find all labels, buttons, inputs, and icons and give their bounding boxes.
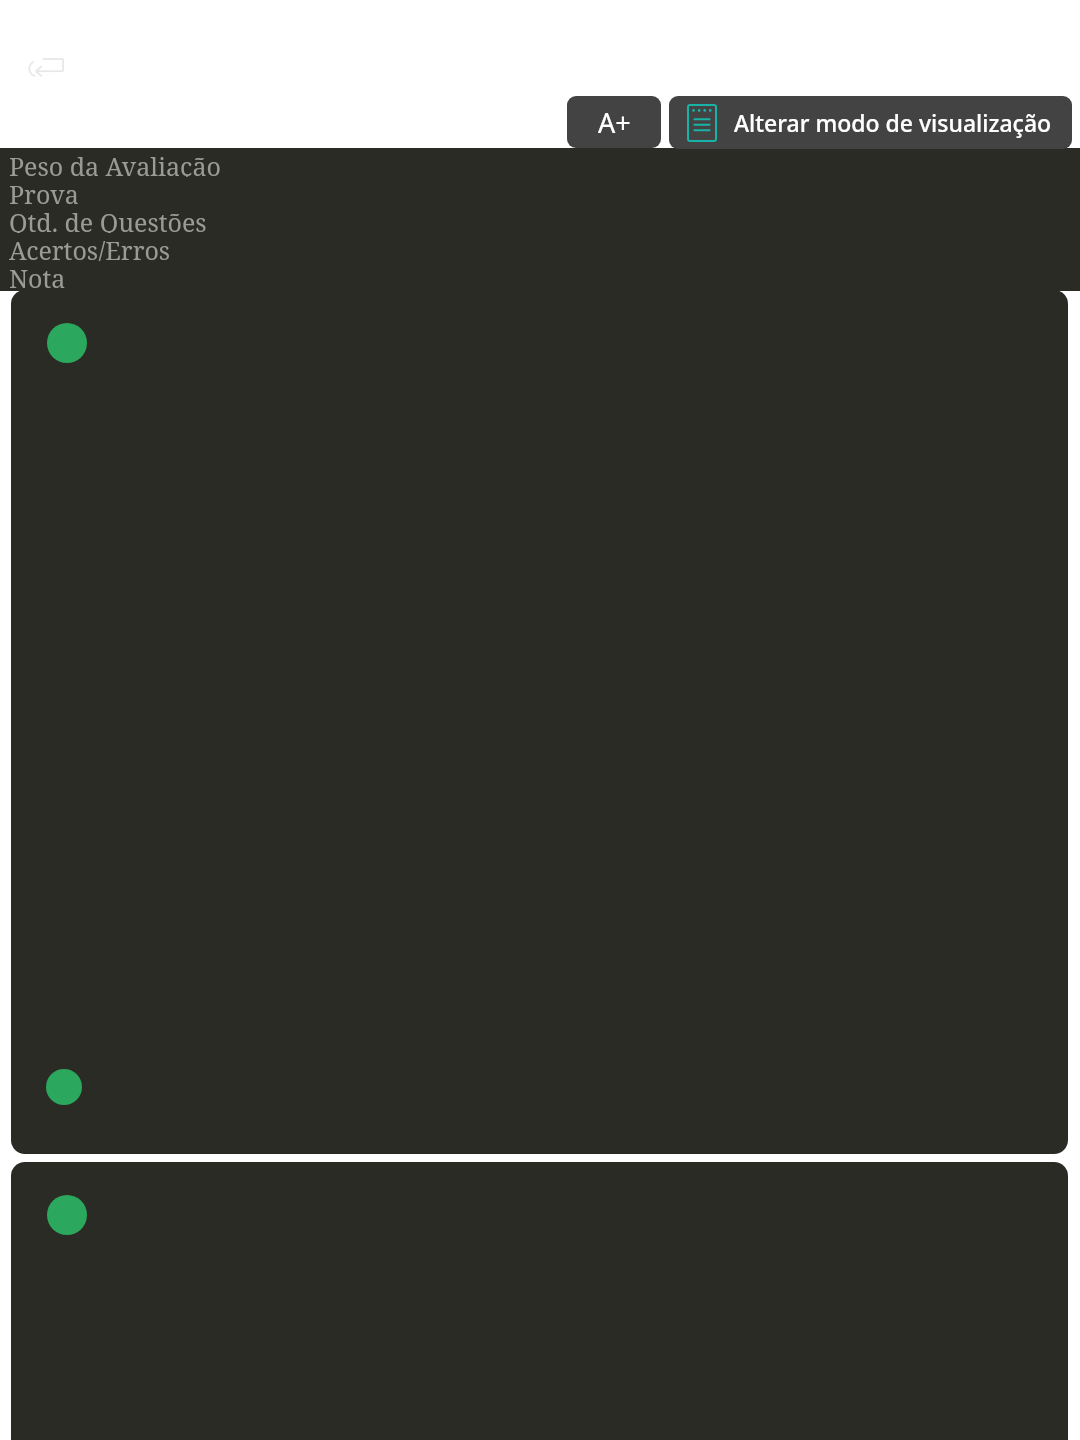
button[interactable]: Voltar: [27, 52, 71, 84]
staticText: Acertos/Erros: [9, 233, 171, 261]
staticText: Nota: [9, 261, 66, 289]
button[interactable]: Prova: [9, 177, 1080, 205]
button[interactable]: Nota: [9, 261, 1080, 289]
staticText: Qtd. de Questões: [9, 205, 207, 233]
button[interactable]: Qtd. de Questões: [9, 205, 1080, 233]
staticText: Prova: [9, 177, 79, 205]
staticText: A+: [598, 104, 631, 141]
button[interactable]: [11, 290, 1068, 1154]
button[interactable]: Acertos/Erros: [9, 233, 1080, 261]
button[interactable]: Alterar modo de visualização: [669, 96, 1072, 149]
button[interactable]: A+: [567, 96, 661, 148]
staticText: Alterar modo de visualização: [734, 107, 1052, 138]
button[interactable]: Peso da Avaliação: [9, 149, 1080, 177]
staticText: Peso da Avaliação: [9, 149, 221, 177]
button[interactable]: [11, 1162, 1068, 1440]
